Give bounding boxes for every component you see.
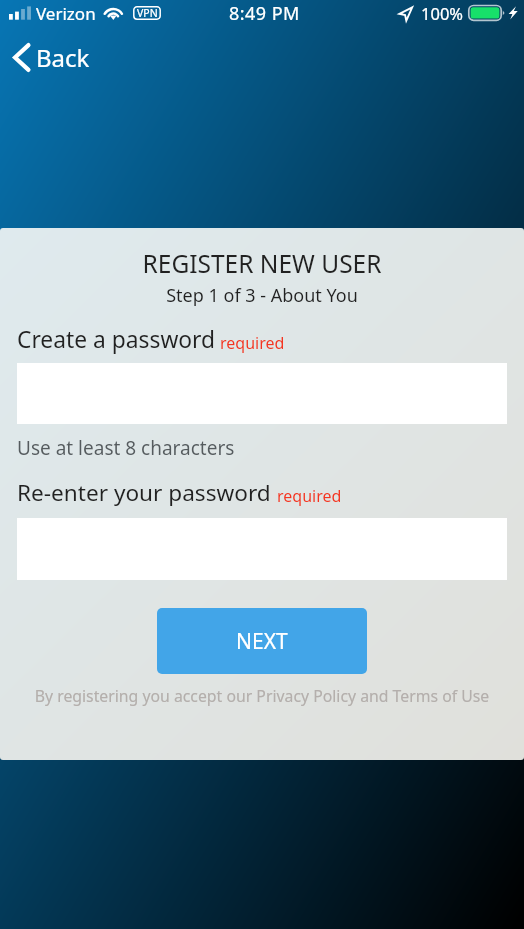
staticText: 8:49 PM bbox=[229, 1, 300, 26]
staticText: NEXT bbox=[236, 627, 288, 656]
button[interactable]: By registering you accept our Privacy Po… bbox=[0, 678, 524, 704]
button[interactable]: Back bbox=[0, 35, 104, 79]
other: Cellular signal strength bbox=[9, 6, 31, 20]
staticText: Back bbox=[36, 41, 90, 74]
staticText: Use at least 8 characters bbox=[17, 435, 235, 461]
staticText: Create a password bbox=[17, 324, 216, 355]
other: Charging bbox=[508, 5, 518, 20]
other: Wi-Fi connected bbox=[103, 5, 125, 21]
staticText: Step 1 of 3 - About You bbox=[0, 283, 524, 308]
staticText: required bbox=[277, 485, 342, 507]
staticText: Verizon bbox=[36, 2, 96, 25]
staticText: REGISTER NEW USER bbox=[0, 247, 524, 280]
staticText: VPN bbox=[137, 6, 158, 20]
staticText: required bbox=[220, 332, 285, 354]
other: Battery full bbox=[468, 5, 506, 21]
staticText: Re-enter your password bbox=[17, 477, 271, 508]
button[interactable]: NEXT bbox=[157, 608, 367, 674]
staticText: 100% bbox=[421, 2, 464, 24]
other: Location services active bbox=[398, 6, 414, 22]
staticText: By registering you accept our Privacy Po… bbox=[0, 685, 524, 707]
